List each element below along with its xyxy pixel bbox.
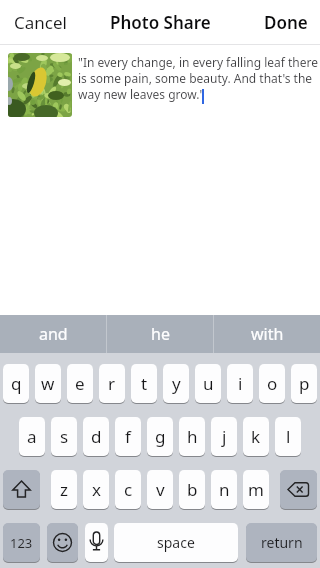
button[interactable]: g (147, 417, 173, 456)
button[interactable]: v (147, 470, 173, 509)
staticText: return (261, 533, 303, 552)
button[interactable]: a (19, 417, 45, 456)
button[interactable] (3, 470, 40, 509)
staticText: c (124, 478, 133, 501)
button[interactable]: k (243, 417, 269, 456)
staticText: y (172, 372, 181, 395)
staticText: w (41, 372, 55, 395)
button[interactable]: he (107, 315, 213, 353)
staticText: 123 (10, 534, 33, 552)
staticText: d (91, 425, 102, 448)
button[interactable]: with (214, 315, 320, 353)
button[interactable]: d (83, 417, 109, 456)
button[interactable]: o (259, 364, 285, 403)
button[interactable]: z (51, 470, 77, 509)
staticText: t (141, 372, 148, 395)
button[interactable]: p (291, 364, 317, 403)
button[interactable]: n (211, 470, 237, 509)
staticText: x (92, 478, 101, 501)
staticText: a (27, 425, 37, 448)
button[interactable]: w (35, 364, 61, 403)
button[interactable]: j (211, 417, 237, 456)
button[interactable]: s (51, 417, 77, 456)
staticText: Done (264, 11, 308, 34)
button[interactable]: Done (264, 11, 308, 34)
button[interactable]: f (115, 417, 141, 456)
staticText: with (251, 323, 284, 345)
staticText: r (108, 372, 116, 395)
staticText: h (187, 425, 198, 448)
staticText: j (222, 425, 227, 448)
staticText: z (60, 478, 68, 501)
staticText: v (156, 478, 165, 501)
button[interactable]: l (275, 417, 301, 456)
staticText: l (286, 425, 291, 448)
staticText: k (251, 425, 261, 448)
staticText: and (39, 323, 68, 345)
staticText: p (299, 372, 310, 395)
button[interactable]: Cancel (14, 11, 67, 34)
button[interactable]: u (195, 364, 221, 403)
button[interactable]: m (243, 470, 269, 509)
button[interactable]: i (227, 364, 253, 403)
staticText: n (219, 478, 230, 501)
staticText: Photo Share (110, 11, 211, 34)
button[interactable]: t (131, 364, 157, 403)
staticText: u (203, 372, 214, 395)
button[interactable]: e (67, 364, 93, 403)
button[interactable]: space (114, 523, 238, 562)
button[interactable]: q (3, 364, 29, 403)
staticText: "In every change, in every falling leaf … (78, 54, 319, 102)
staticText: m (248, 478, 264, 501)
button[interactable]: y (163, 364, 189, 403)
button[interactable]: return (246, 523, 317, 562)
staticText: f (125, 425, 131, 448)
button[interactable]: h (179, 417, 205, 456)
staticText: b (187, 478, 198, 501)
button[interactable]: x (83, 470, 109, 509)
staticText: e (75, 372, 85, 395)
staticText: o (267, 372, 278, 395)
staticText: q (11, 372, 22, 395)
button[interactable] (280, 470, 317, 509)
staticText: g (155, 425, 166, 448)
button[interactable]: c (115, 470, 141, 509)
button[interactable] (47, 523, 78, 562)
button[interactable]: b (179, 470, 205, 509)
staticText: Cancel (14, 11, 67, 34)
button[interactable]: 123 (3, 523, 40, 562)
staticText: he (151, 323, 170, 345)
button[interactable]: r (99, 364, 125, 403)
button[interactable]: and (0, 315, 106, 353)
staticText: s (60, 425, 69, 448)
staticText: i (238, 372, 243, 395)
staticText: space (157, 533, 195, 552)
button[interactable] (85, 523, 108, 562)
